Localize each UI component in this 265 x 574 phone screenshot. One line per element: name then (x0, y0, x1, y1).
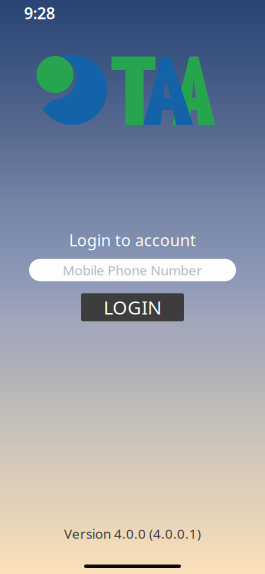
staticText: LOGIN (103, 295, 161, 320)
staticText: 9:28 (24, 2, 55, 24)
staticText: Version 4.0.0 (4.0.0.1) (64, 525, 201, 542)
staticText: Mobile Phone Number (62, 261, 202, 279)
button[interactable]: LOGIN (81, 293, 184, 321)
staticText: Login to account (69, 229, 196, 251)
